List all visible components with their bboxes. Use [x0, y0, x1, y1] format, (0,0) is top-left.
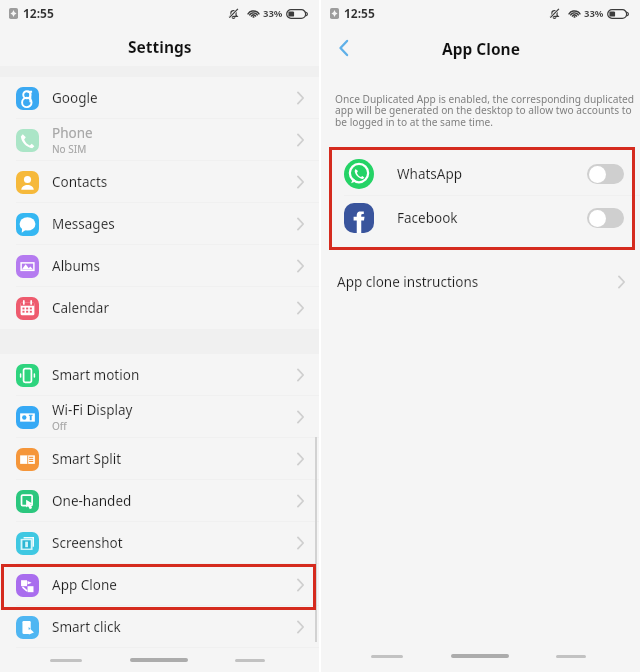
staticText: Messages: [52, 215, 115, 233]
button[interactable]: Smart motion: [0, 354, 319, 396]
button[interactable]: Google: [0, 77, 319, 119]
staticText: One-handed: [52, 492, 132, 510]
staticText: Off: [52, 419, 67, 433]
staticText: No SIM: [52, 142, 87, 156]
button[interactable]: Screenshot: [0, 522, 319, 564]
staticText: 33%: [584, 7, 604, 20]
button[interactable]: Toggle WhatsApp: [587, 164, 624, 184]
button[interactable]: WhatsApp: [321, 152, 640, 196]
button[interactable]: Wi-Fi Display: [0, 396, 319, 438]
button[interactable]: Toggle Facebook: [587, 208, 624, 228]
staticText: App Clone: [52, 576, 117, 594]
staticText: Facebook: [397, 209, 587, 227]
button[interactable]: Back: [235, 659, 265, 662]
button[interactable]: Home: [451, 654, 509, 658]
staticText: 12:55: [344, 5, 375, 21]
staticText: Screenshot: [52, 534, 123, 552]
staticText: Settings: [128, 36, 192, 57]
staticText: Smart motion: [52, 366, 140, 384]
staticText: Albums: [52, 257, 100, 275]
staticText: App Clone: [442, 38, 520, 59]
staticText: Calendar: [52, 299, 109, 317]
staticText: App clone instructions: [337, 273, 479, 291]
staticText: Once Duplicated App is enabled, the corr…: [335, 92, 636, 129]
button[interactable]: App Clone: [0, 564, 319, 606]
staticText: Phone: [52, 124, 93, 142]
staticText: 12:55: [23, 5, 54, 21]
button[interactable]: Messages: [0, 203, 319, 245]
staticText: Contacts: [52, 173, 108, 191]
button[interactable]: Facebook: [321, 196, 640, 240]
staticText: Google: [52, 89, 98, 107]
button[interactable]: Contacts: [0, 161, 319, 203]
button[interactable]: App clone instructions: [321, 262, 640, 302]
button[interactable]: Back: [329, 33, 359, 63]
button[interactable]: Back: [556, 655, 586, 658]
staticText: Smart click: [52, 618, 121, 636]
button[interactable]: Home: [130, 658, 188, 662]
button[interactable]: Phone: [0, 119, 319, 161]
button[interactable]: Recents: [371, 655, 403, 658]
staticText: Wi-Fi Display: [52, 401, 133, 419]
staticText: Smart Split: [52, 450, 122, 468]
button[interactable]: Calendar: [0, 287, 319, 329]
button[interactable]: Smart click: [0, 606, 319, 648]
button[interactable]: One-handed: [0, 480, 319, 522]
staticText: WhatsApp: [397, 165, 587, 183]
button[interactable]: Recents: [50, 659, 82, 662]
button[interactable]: Albums: [0, 245, 319, 287]
button[interactable]: Smart Split: [0, 438, 319, 480]
staticText: 33%: [263, 7, 283, 20]
